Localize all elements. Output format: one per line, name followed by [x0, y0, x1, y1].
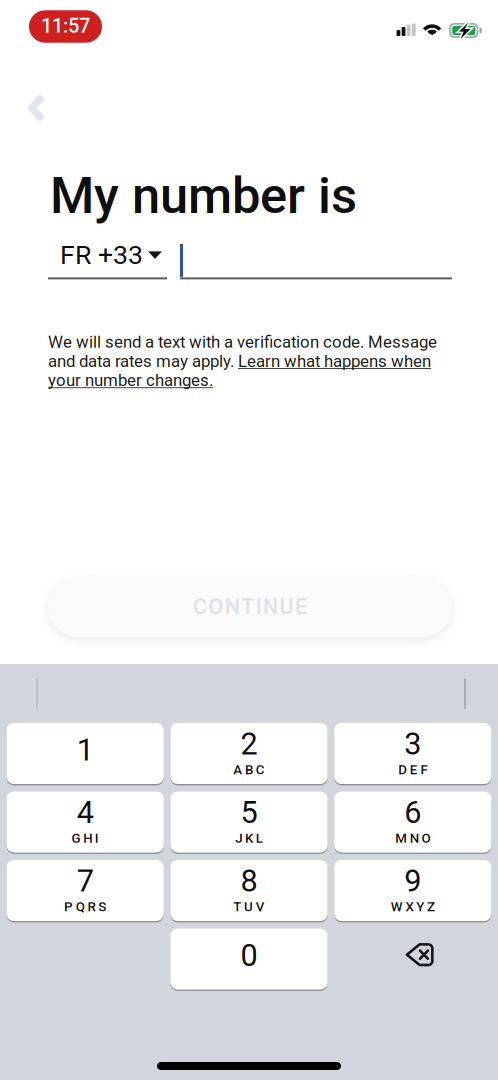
- staticText: V: [256, 899, 265, 914]
- staticText: I: [256, 594, 262, 619]
- staticText: M: [395, 830, 407, 846]
- staticText: E: [295, 594, 307, 619]
- staticText: P: [64, 899, 73, 914]
- staticText: 1: [77, 732, 94, 768]
- staticText: S: [98, 899, 106, 914]
- staticText: O: [208, 594, 223, 619]
- staticText: 4: [77, 794, 94, 830]
- staticText: H: [83, 830, 92, 846]
- staticText: Q: [76, 899, 85, 914]
- staticText: U: [279, 594, 293, 619]
- staticText: L: [256, 830, 263, 846]
- staticText: 9: [404, 863, 421, 899]
- button[interactable]: Delete: [334, 928, 491, 989]
- staticText: J: [235, 830, 242, 846]
- staticText: E: [410, 762, 418, 777]
- button[interactable]: 6: [334, 791, 491, 852]
- button[interactable]: 7: [6, 860, 164, 921]
- staticText: N: [410, 830, 419, 846]
- staticText: T: [241, 594, 254, 619]
- staticText: U: [244, 899, 253, 914]
- button[interactable]: FR +33: [48, 247, 167, 277]
- button[interactable]: 4: [6, 791, 164, 852]
- button[interactable]: 9: [334, 860, 491, 921]
- staticText: My number is: [50, 166, 357, 225]
- staticText: K: [245, 830, 253, 846]
- staticText: Y: [416, 899, 424, 914]
- staticText: C: [256, 762, 265, 777]
- staticText: A: [233, 762, 242, 777]
- staticText: G: [71, 830, 80, 846]
- staticText: We will send a text with a verification …: [48, 332, 437, 390]
- button[interactable]: 5: [170, 791, 328, 852]
- staticText: R: [87, 899, 95, 914]
- staticText: 3: [404, 726, 421, 762]
- button[interactable]: 3: [334, 723, 491, 784]
- staticText: 7: [77, 863, 94, 899]
- staticText: F: [420, 762, 427, 777]
- staticText: 6: [404, 794, 421, 830]
- staticText: N: [225, 594, 240, 619]
- staticText: 11:57: [41, 14, 90, 38]
- staticText: D: [398, 762, 407, 777]
- staticText: 2: [240, 726, 257, 762]
- button[interactable]: C: [48, 577, 452, 637]
- staticText: Z: [427, 899, 435, 914]
- staticText: FR +33: [60, 239, 143, 271]
- button[interactable]: Back: [0, 82, 56, 134]
- button[interactable]: 0: [170, 928, 328, 989]
- staticText: 5: [240, 794, 257, 830]
- staticText: N: [263, 594, 278, 619]
- button[interactable]: 2: [170, 723, 328, 784]
- staticText: C: [193, 594, 207, 619]
- staticText: O: [421, 830, 430, 846]
- staticText: 8: [240, 863, 257, 899]
- button[interactable]: 8: [170, 860, 328, 921]
- staticText: 0: [240, 937, 257, 973]
- staticText: B: [245, 762, 253, 777]
- staticText: W: [391, 899, 403, 914]
- button[interactable]: 1: [6, 723, 164, 784]
- staticText: T: [233, 899, 241, 914]
- staticText: X: [405, 899, 413, 914]
- staticText: I: [95, 830, 99, 846]
